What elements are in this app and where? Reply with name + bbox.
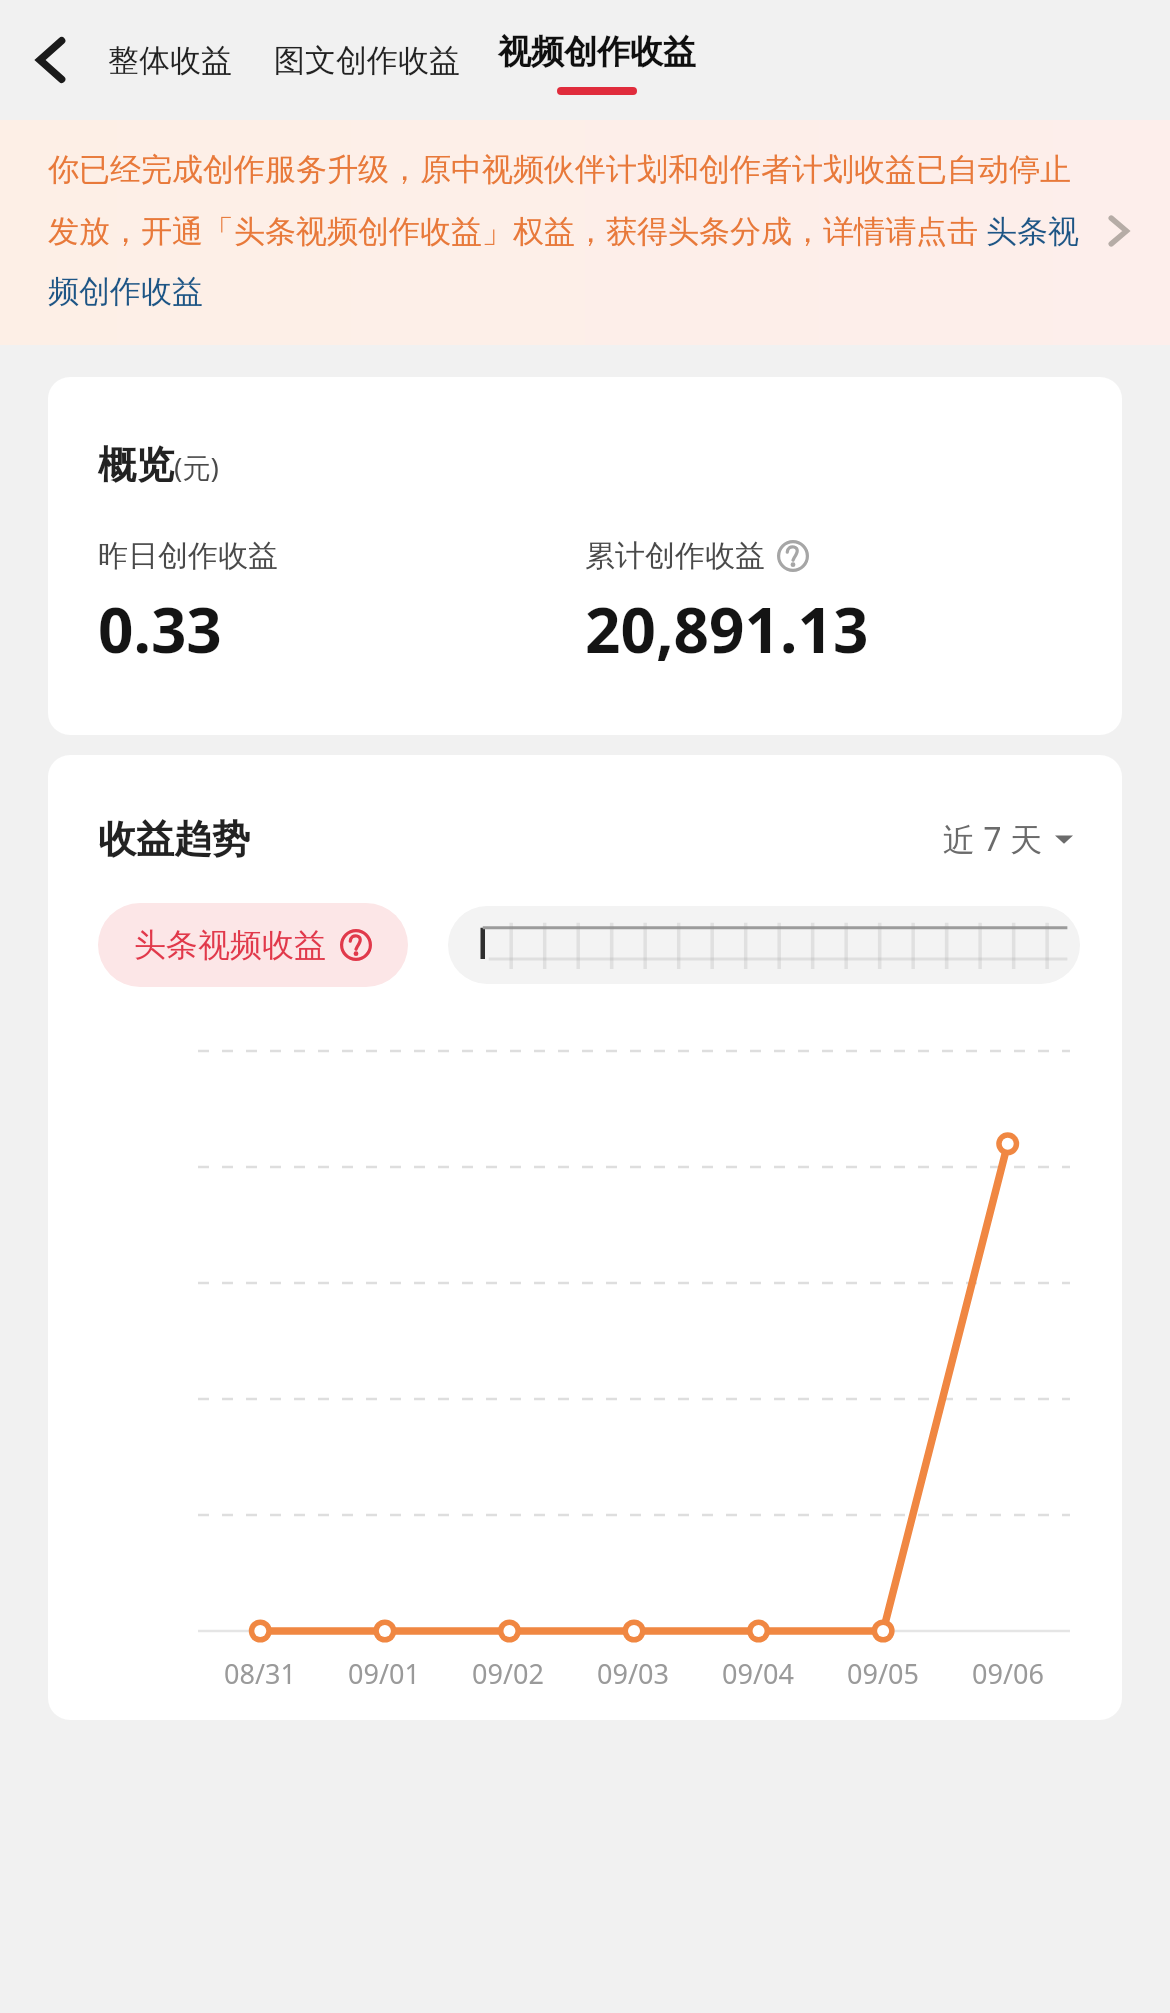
staticText: 09/01 (348, 1655, 420, 1692)
button[interactable]: 你已经完成创作服务升级，原中视频伙伴计划和创作者计划收益已自动停止发放，开通「头… (0, 120, 1170, 345)
staticText: 09/06 (972, 1655, 1044, 1692)
staticText: 视频创作收益 (498, 31, 696, 73)
button[interactable]: 其他收益 (448, 906, 1080, 984)
button[interactable]: 累计创作收益说明 (777, 540, 809, 572)
button[interactable]: 近 7 天 (937, 811, 1080, 867)
staticText: 累计创作收益 (585, 537, 765, 575)
staticText: 0.33 (98, 587, 222, 671)
staticText: 09/03 (597, 1655, 669, 1692)
staticText: 近 7 天 (943, 817, 1042, 861)
button[interactable]: 头条视频收益 (98, 903, 408, 987)
staticText: 08/31 (224, 1655, 296, 1692)
staticText: 图文创作收益 (274, 41, 460, 80)
staticText: 09/02 (472, 1655, 544, 1692)
staticText: 收益趋势 (98, 815, 250, 863)
button[interactable]: 整体收益 (104, 0, 236, 120)
staticText: 头条视频收益 (134, 925, 326, 965)
staticText: 整体收益 (108, 41, 232, 80)
staticText: 09/05 (847, 1655, 919, 1692)
button[interactable]: Back (0, 0, 104, 120)
staticText: 概览(元) (98, 441, 219, 489)
button[interactable]: 视频创作收益 (498, 0, 696, 120)
staticText: 09/04 (722, 1655, 794, 1692)
staticText: 20,891.13 (585, 587, 869, 671)
button[interactable]: 图文创作收益 (270, 0, 464, 120)
staticText: 你已经完成创作服务升级，原中视频伙伴计划和创作者计划收益已自动停止发放，开通「头… (48, 150, 1086, 311)
staticText: 昨日创作收益 (98, 537, 278, 575)
